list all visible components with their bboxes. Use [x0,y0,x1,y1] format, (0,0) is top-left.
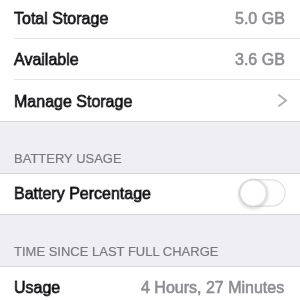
staticText: Available [14,51,79,69]
staticText: 3.6 GB [235,51,285,69]
staticText: Battery Percentage [14,185,151,203]
button[interactable]: Battery Percentage toggle [239,179,286,207]
staticText: BATTERY USAGE [14,151,122,166]
staticText: Available [14,51,79,69]
staticText: 4 Hours, 27 Minutes [141,279,285,297]
other: Manage Storage [278,94,287,107]
staticText: BATTERY USAGE [14,151,122,166]
staticText: Total Storage [14,10,109,28]
staticText: Total Storage [14,10,109,28]
staticText: 5.0 GB [235,10,285,28]
staticText: TIME SINCE LAST FULL CHARGE [14,244,219,259]
staticText: 4 Hours, 27 Minutes [141,279,285,297]
button[interactable]: Available [0,39,300,80]
staticText: TIME SINCE LAST FULL CHARGE [14,244,219,259]
button[interactable]: Battery Percentage [0,174,300,214]
button[interactable]: Manage Storage [0,80,300,121]
staticText: 3.6 GB [235,51,285,69]
staticText: Manage Storage [14,93,133,111]
staticText: Manage Storage [14,93,133,111]
button[interactable]: Total Storage [0,0,300,38]
button[interactable]: Usage [0,267,300,300]
staticText: Battery Percentage [14,185,151,203]
staticText: Usage [14,279,61,297]
staticText: Usage [14,279,61,297]
staticText: 5.0 GB [235,10,285,28]
